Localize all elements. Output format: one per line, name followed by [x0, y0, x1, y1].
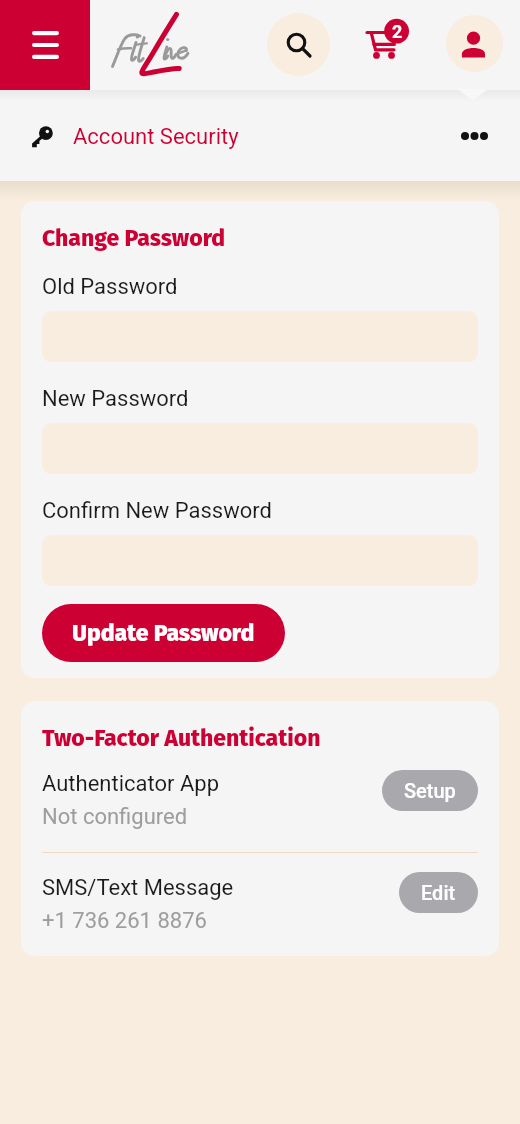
staticText: 2 [392, 21, 403, 42]
button[interactable]: Account [446, 15, 503, 72]
staticText: New Password [42, 386, 189, 412]
staticText: Update Password [72, 619, 255, 647]
button[interactable]: Menu [0, 0, 90, 90]
button[interactable]: More options [448, 110, 500, 162]
staticText: Change Password [42, 224, 226, 252]
staticText: Old Password [42, 274, 178, 300]
staticText: Two-Factor Authentication [42, 724, 321, 752]
staticText: Not configured [42, 804, 188, 830]
staticText: Confirm New Password [42, 498, 272, 524]
button[interactable]: Update Password [42, 604, 285, 662]
button[interactable]: Search [267, 13, 330, 76]
button[interactable]: Cart, 2 items [363, 12, 411, 60]
staticText: Edit [421, 881, 456, 904]
staticText: Authenticator App [42, 771, 220, 797]
button[interactable]: Setup [382, 770, 478, 811]
staticText: SMS/Text Message [42, 875, 234, 901]
staticText: +1 736 261 8876 [42, 908, 207, 934]
staticText: Setup [404, 779, 456, 802]
button[interactable]: Edit [399, 872, 478, 913]
staticText: Account Security [73, 124, 239, 150]
